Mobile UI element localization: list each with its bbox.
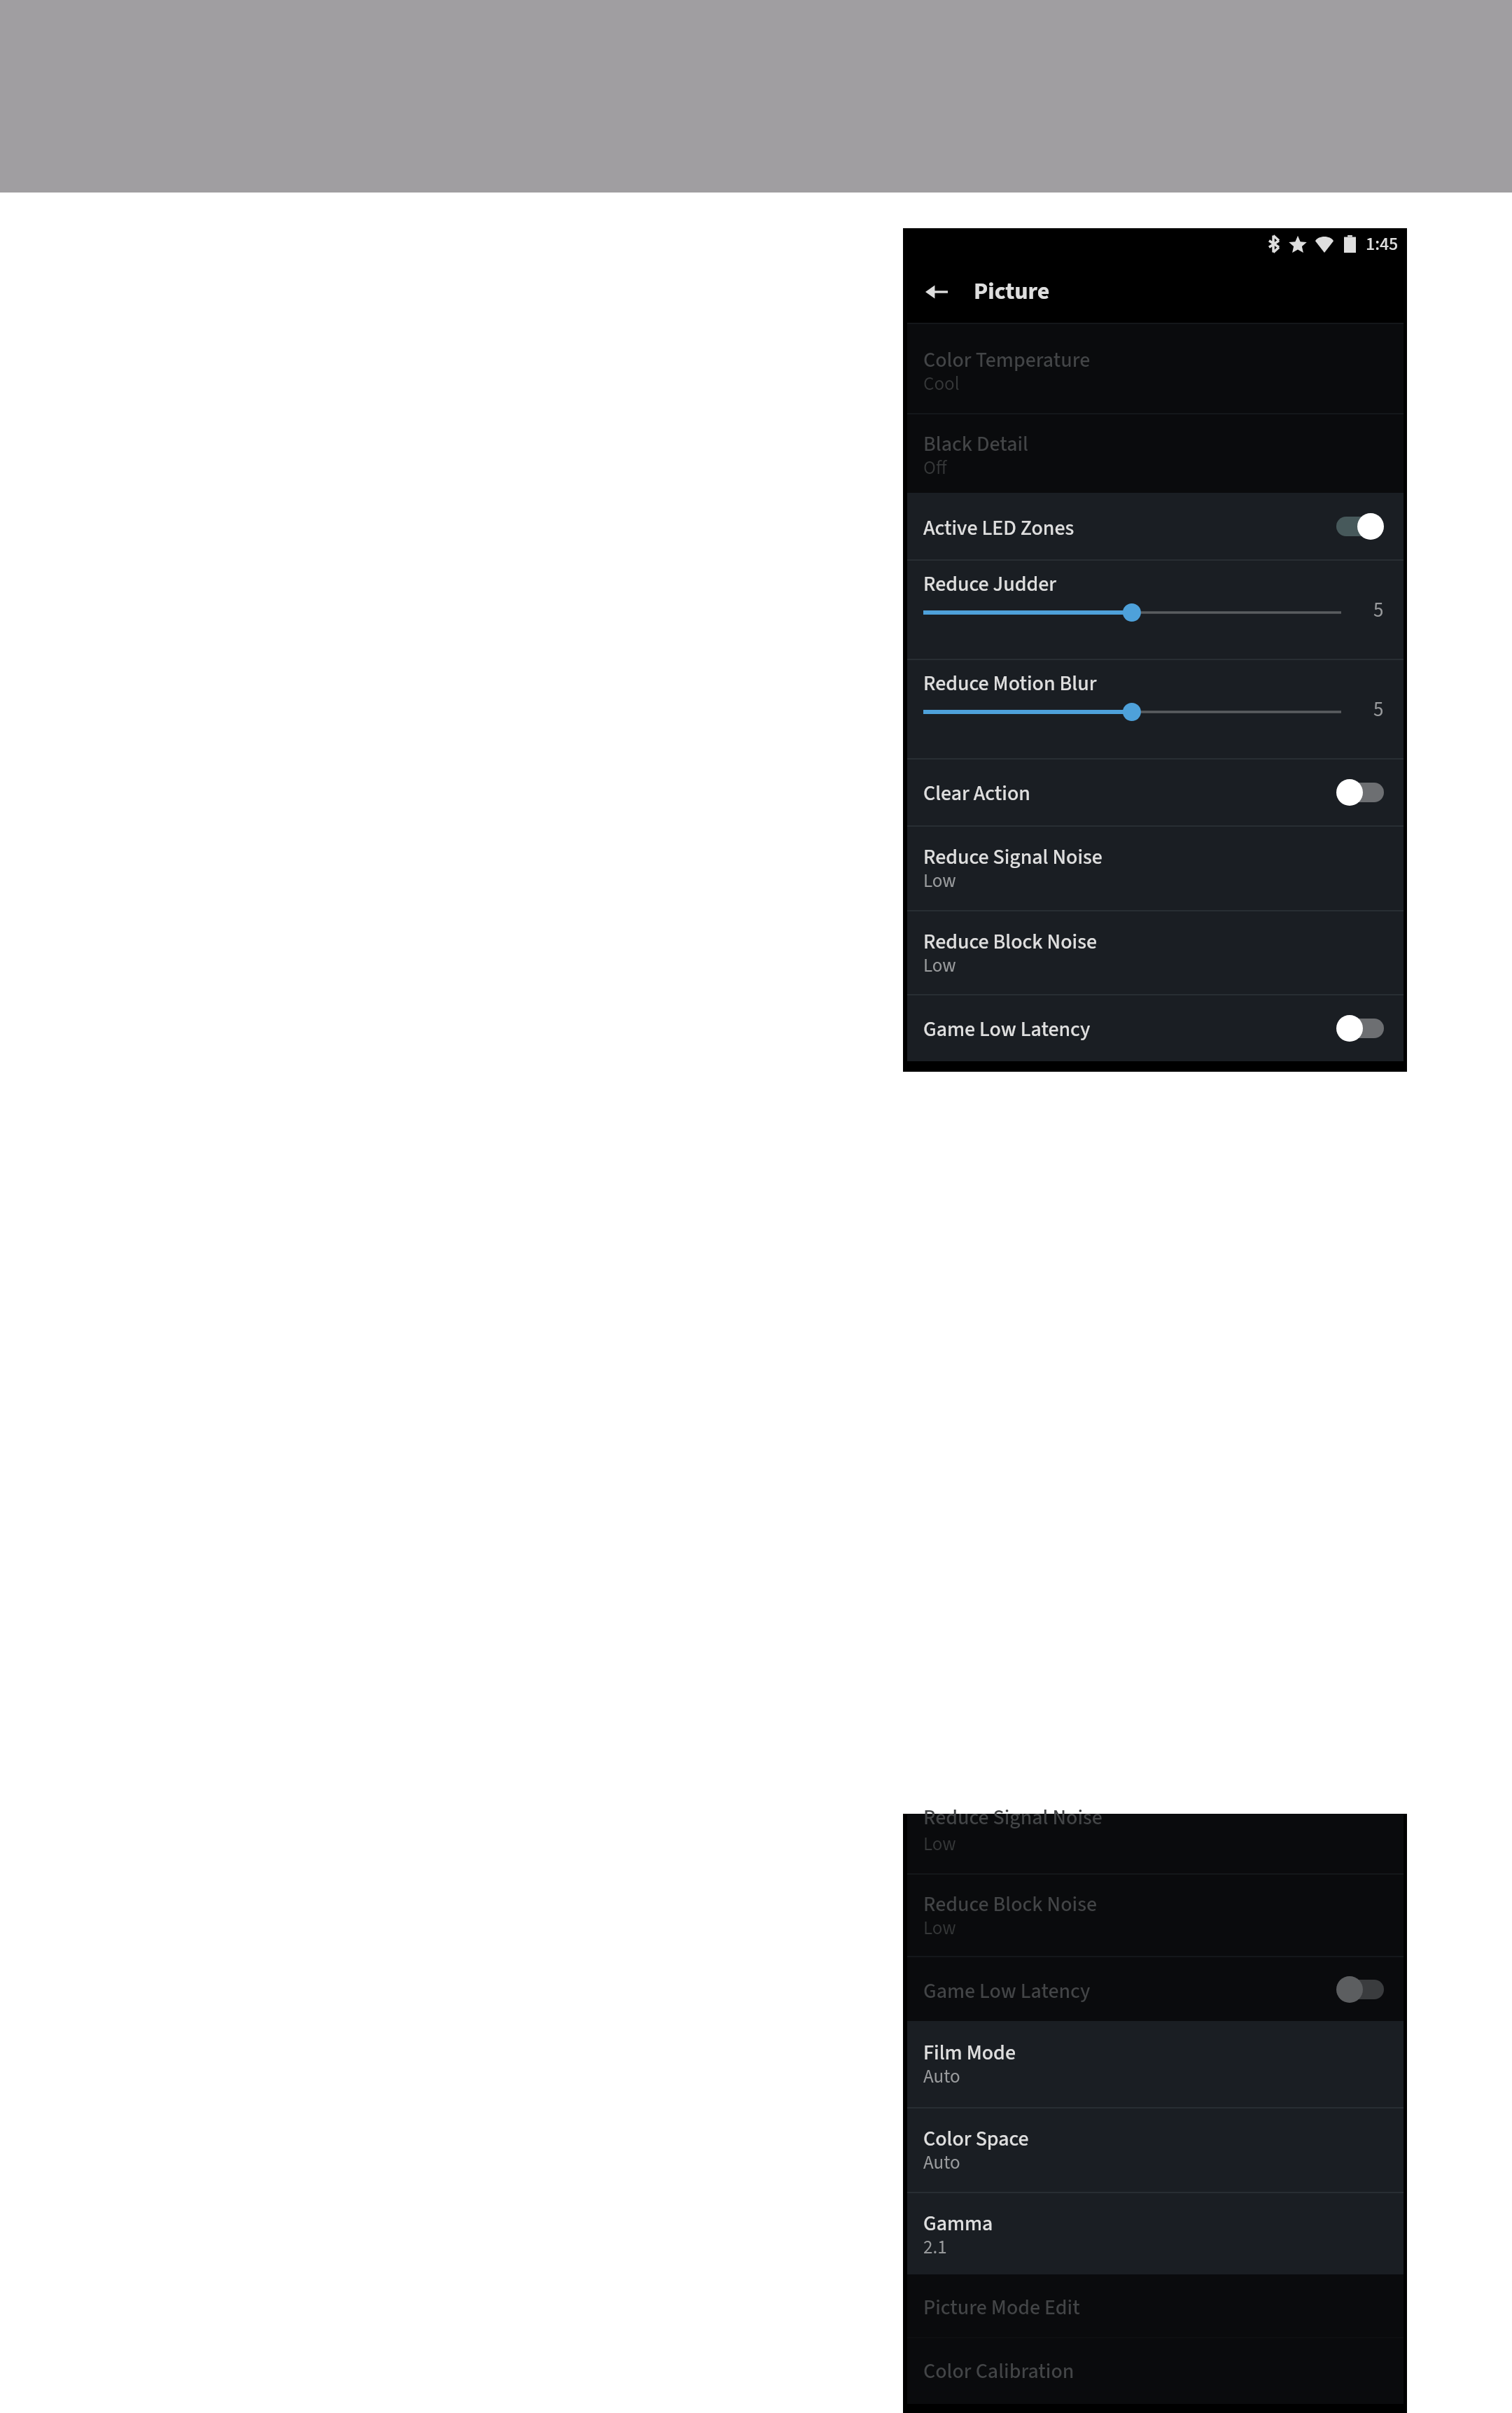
staticText: Film Mode: [923, 2038, 1016, 2068]
staticText: Cool: [923, 370, 960, 397]
button[interactable]: Picture Mode Edit: [907, 2274, 1403, 2337]
staticText: Reduce Motion Blur: [923, 669, 1097, 699]
staticText: Low: [923, 1831, 956, 1857]
staticText: 1:45: [1366, 231, 1399, 257]
staticText: 2.1: [923, 2234, 947, 2260]
button[interactable]: Active LED Zones: [907, 493, 1403, 559]
button[interactable]: Reduce Block Noise: [907, 911, 1403, 994]
staticText: Gamma: [923, 2209, 993, 2239]
staticText: 5: [1373, 695, 1384, 724]
button[interactable]: Reduce Block Noise: [907, 1875, 1403, 1956]
staticText: Low: [923, 1915, 956, 1941]
staticText: Auto: [923, 2063, 960, 2090]
button[interactable]: Active LED Zones, on: [1336, 513, 1384, 540]
staticText: Auto: [923, 2149, 960, 2176]
button[interactable]: Back: [921, 277, 952, 307]
button[interactable]: Game Low Latency: [907, 1957, 1403, 2021]
staticText: Game Low Latency: [923, 1014, 1091, 1044]
staticText: Reduce Judder: [923, 569, 1057, 599]
button[interactable]: Game Low Latency, off: [1336, 1015, 1384, 1042]
staticText: Game Low Latency: [923, 1976, 1091, 2006]
button[interactable]: Black Detail: [907, 414, 1403, 493]
staticText: Color Space: [923, 2124, 1029, 2154]
button[interactable]: Game Low Latency, off: [1336, 1976, 1384, 2003]
staticText: 5: [1373, 596, 1384, 624]
button[interactable]: Gamma: [907, 2193, 1403, 2274]
staticText: Low: [923, 952, 956, 979]
button[interactable]: Color Space: [907, 2108, 1403, 2192]
button[interactable]: Clear Action: [907, 760, 1403, 825]
button[interactable]: Clear Action, off: [1336, 779, 1384, 806]
button[interactable]: Color Temperature: [907, 324, 1403, 413]
staticText: Color Calibration: [923, 2356, 1074, 2386]
button[interactable]: Reduce Judder: [907, 561, 1403, 659]
staticText: Black Detail: [923, 429, 1028, 459]
staticText: Color Temperature: [923, 345, 1091, 375]
staticText: Off: [923, 454, 947, 481]
button[interactable]: Reduce Signal Noise: [907, 827, 1403, 910]
button[interactable]: Game Low Latency: [907, 995, 1403, 1061]
staticText: Low: [923, 867, 956, 894]
staticText: Picture: [974, 274, 1050, 308]
button[interactable]: Reduce Motion Blur: [907, 660, 1403, 758]
staticText: Reduce Signal Noise: [923, 1803, 1102, 1833]
staticText: Reduce Block Noise: [923, 1889, 1097, 1919]
button[interactable]: Reduce Signal Noise: [907, 1814, 1403, 1873]
button[interactable]: Color Calibration: [907, 2338, 1403, 2404]
staticText: Active LED Zones: [923, 513, 1074, 543]
staticText: Reduce Block Noise: [923, 927, 1097, 957]
button[interactable]: Film Mode: [907, 2021, 1403, 2107]
staticText: Clear Action: [923, 778, 1030, 809]
staticText: Picture Mode Edit: [923, 2293, 1080, 2323]
staticText: Reduce Signal Noise: [923, 842, 1102, 872]
